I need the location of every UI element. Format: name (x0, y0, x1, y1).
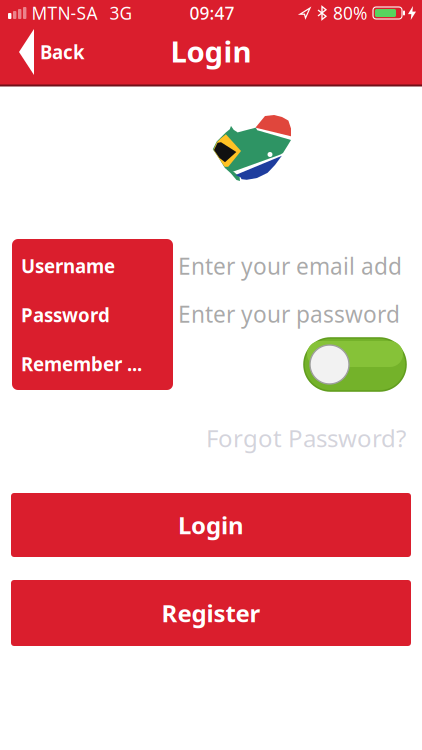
button[interactable]: Forgot Password? (206, 425, 406, 451)
staticText: Back (40, 40, 85, 64)
staticText: 3G (109, 1, 132, 24)
staticText: Remember ... (21, 352, 142, 376)
staticText: 09:47 (189, 1, 234, 24)
staticText: Enter your email add (178, 251, 402, 281)
staticText: MTN-SA (31, 1, 97, 24)
button[interactable]: Enter your password (178, 302, 400, 326)
staticText: Forgot Password? (206, 422, 406, 454)
staticText: Username (21, 254, 115, 278)
button[interactable]: Enter your email add (178, 254, 402, 278)
staticText: 80% (333, 1, 367, 24)
button[interactable]: Remember me (304, 338, 406, 391)
staticText: Enter your password (178, 299, 400, 329)
staticText: Login (178, 509, 244, 541)
staticText: Password (21, 303, 110, 327)
button[interactable]: Login (11, 493, 411, 557)
staticText: Login (170, 31, 251, 70)
button[interactable]: Register (11, 580, 411, 646)
button[interactable]: Back (19, 27, 85, 77)
staticText: Register (161, 597, 260, 629)
